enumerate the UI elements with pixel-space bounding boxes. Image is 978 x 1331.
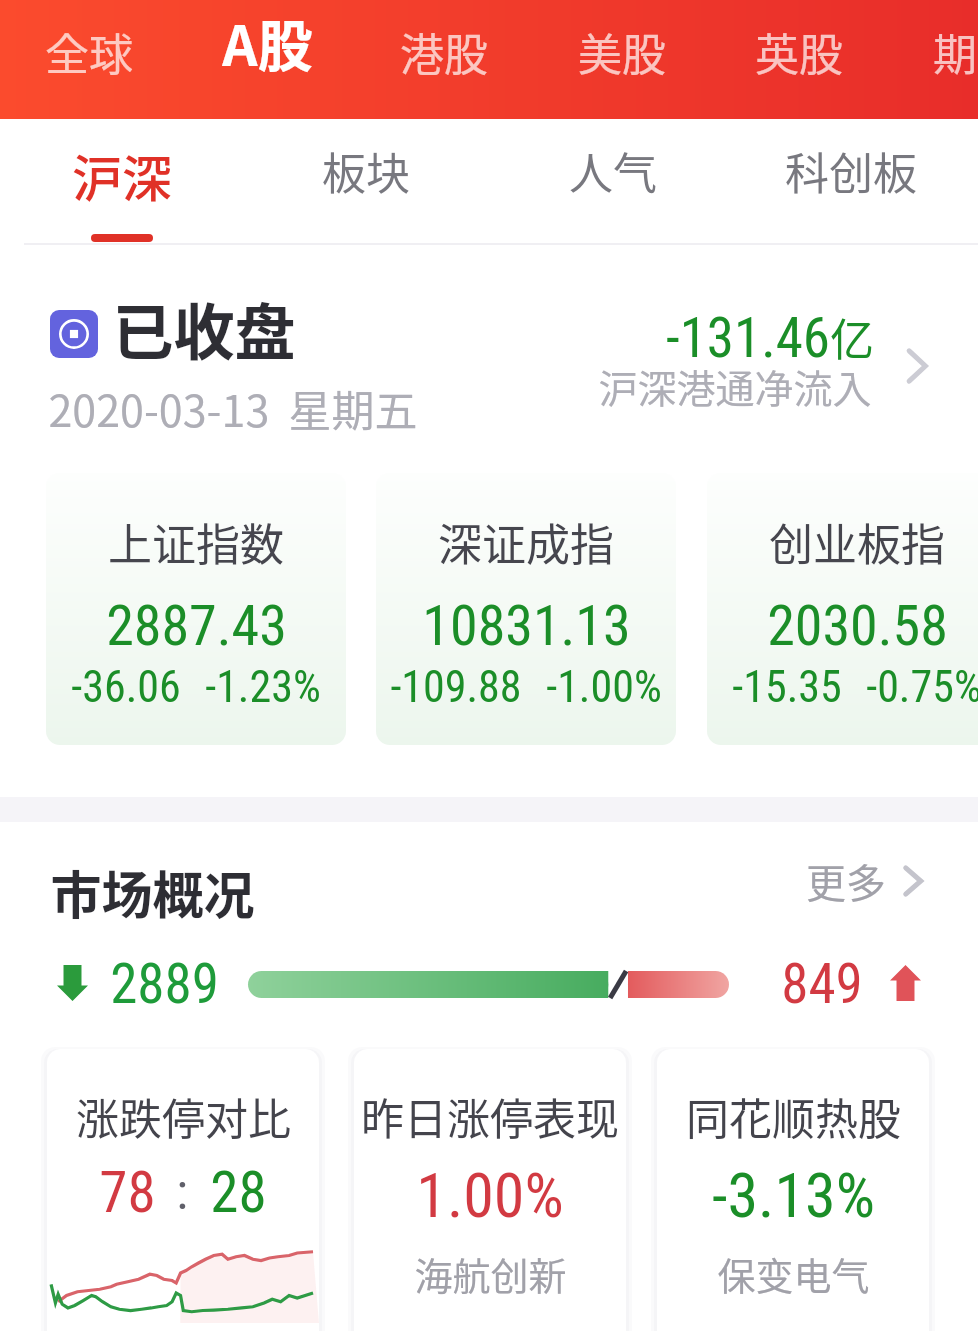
staticText: -109.88 bbox=[390, 661, 522, 713]
staticText: 亿 bbox=[830, 305, 874, 369]
button[interactable]: 英股 bbox=[729, 0, 869, 119]
staticText: 1.00% bbox=[416, 1159, 564, 1232]
staticText: 已收盘 bbox=[112, 284, 296, 372]
button[interactable]: 深证成指 bbox=[376, 473, 676, 745]
button[interactable]: 沪深 bbox=[22, 119, 222, 245]
staticText: 沪深港通净流入 bbox=[598, 358, 872, 414]
button[interactable] bbox=[0, 260, 978, 460]
staticText: -1.23% bbox=[205, 661, 321, 713]
button[interactable]: 科创板 bbox=[751, 119, 951, 245]
staticText: 板块 bbox=[322, 139, 410, 203]
button[interactable]: 创业板指 bbox=[707, 473, 978, 745]
staticText: 科创板 bbox=[785, 139, 917, 203]
staticText: 人气 bbox=[569, 139, 657, 203]
staticText: 深证成指 bbox=[438, 510, 614, 574]
staticText: 昨日涨停表现 bbox=[361, 1085, 619, 1147]
staticText: -0.75% bbox=[866, 661, 978, 713]
staticText: 期货 bbox=[933, 20, 978, 84]
staticText: 2030.58 bbox=[767, 593, 948, 659]
staticText: -1.00% bbox=[546, 661, 662, 713]
button[interactable]: 板块 bbox=[266, 119, 466, 245]
staticText: 港股 bbox=[400, 20, 488, 84]
button[interactable]: 同花顺热股 bbox=[657, 1049, 929, 1331]
button[interactable]: 昨日涨停表现 bbox=[354, 1049, 626, 1331]
staticText: 沪深 bbox=[72, 139, 172, 211]
staticText: 849 bbox=[781, 952, 863, 1014]
staticText: A股 bbox=[222, 2, 313, 82]
button[interactable]: 上证指数 bbox=[46, 473, 346, 745]
button[interactable]: 更多 bbox=[806, 852, 926, 910]
button[interactable]: 人气 bbox=[513, 119, 713, 245]
staticText: 市场概况 bbox=[50, 855, 255, 929]
staticText: -3.13% bbox=[712, 1159, 875, 1232]
button[interactable]: 全球 bbox=[19, 0, 159, 119]
staticText: 涨跌停对比 bbox=[76, 1085, 291, 1147]
staticText: 创业板指 bbox=[769, 510, 945, 574]
button[interactable]: 港股 bbox=[374, 0, 514, 119]
staticText: 保变电气 bbox=[717, 1246, 870, 1301]
staticText: 78 bbox=[99, 1159, 156, 1226]
staticText: 10831.13 bbox=[422, 593, 631, 659]
staticText: : bbox=[176, 1163, 188, 1222]
staticText: 全球 bbox=[45, 20, 133, 84]
staticText: 28 bbox=[210, 1159, 267, 1226]
button[interactable]: 美股 bbox=[552, 0, 692, 119]
button[interactable]: A股 bbox=[197, 0, 337, 119]
staticText: 上证指数 bbox=[108, 510, 284, 574]
staticText: 美股 bbox=[578, 20, 666, 84]
staticText: -15.35 bbox=[732, 661, 842, 713]
button[interactable]: 期货 bbox=[907, 0, 978, 119]
button[interactable]: 涨跌停对比 bbox=[47, 1049, 319, 1331]
staticText: 2887.43 bbox=[106, 593, 287, 659]
staticText: 2889 bbox=[110, 952, 219, 1014]
staticText: -131.46 bbox=[666, 306, 830, 370]
staticText: -36.06 bbox=[71, 661, 181, 713]
staticText: 海航创新 bbox=[414, 1246, 567, 1301]
other: 北向资金详情 bbox=[903, 343, 931, 389]
staticText: 更多 bbox=[806, 852, 886, 910]
staticText: 同花顺热股 bbox=[686, 1085, 901, 1147]
staticText: 英股 bbox=[755, 20, 843, 84]
staticText: 2020-03-13 星期五 bbox=[48, 377, 418, 439]
